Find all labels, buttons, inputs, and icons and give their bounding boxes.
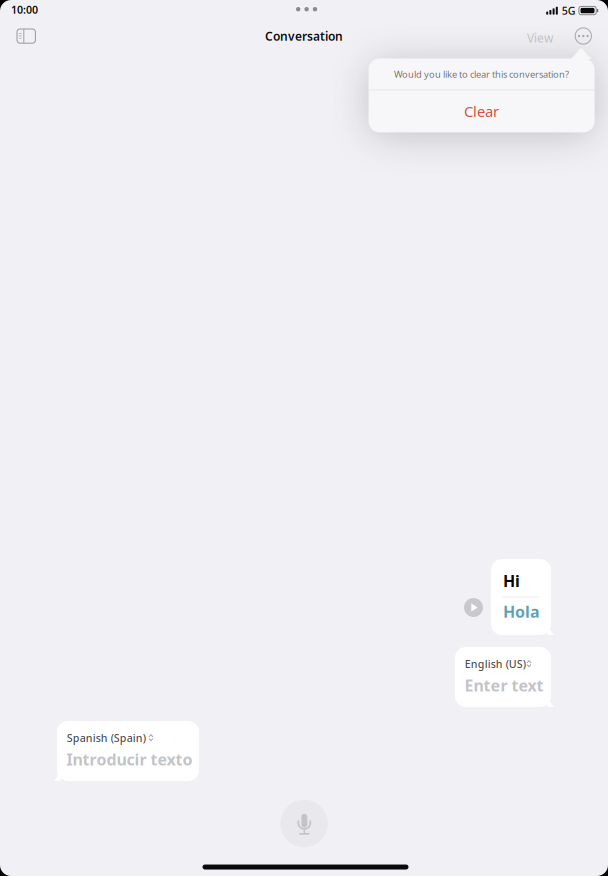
button[interactable]: More options bbox=[570, 23, 596, 49]
staticText: Clear bbox=[464, 101, 499, 121]
button[interactable]: Play translation bbox=[464, 598, 483, 617]
button[interactable]: Show Sidebar bbox=[11, 23, 41, 49]
button[interactable]: Record bbox=[280, 799, 328, 847]
button[interactable]: English (US) bbox=[455, 647, 563, 707]
staticText: 5G bbox=[562, 3, 576, 18]
staticText: Conversation bbox=[265, 28, 343, 44]
staticText: Spanish (Spain) bbox=[67, 731, 146, 745]
button[interactable]: Spanish (Spain) bbox=[57, 721, 211, 781]
staticText: Introducir texto bbox=[66, 749, 192, 770]
staticText: English (US) bbox=[465, 657, 526, 671]
staticText: Hola bbox=[503, 601, 540, 622]
staticText: Would you like to clear this conversatio… bbox=[394, 68, 569, 80]
staticText: View bbox=[527, 30, 553, 46]
staticText: Hi bbox=[503, 570, 520, 591]
button[interactable]: View bbox=[521, 23, 559, 53]
staticText: 10:00 bbox=[11, 2, 38, 17]
staticText: Enter text bbox=[464, 675, 543, 696]
button[interactable]: Clear bbox=[369, 90, 595, 132]
